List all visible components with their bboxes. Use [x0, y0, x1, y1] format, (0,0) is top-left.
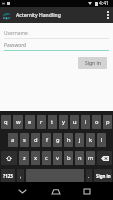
staticText: . [88, 172, 90, 179]
staticText: j [79, 136, 81, 144]
staticText: 4:41 [99, 0, 109, 7]
staticText: u [73, 118, 77, 126]
staticText: x [34, 154, 38, 162]
staticText: Username [4, 30, 28, 37]
button[interactable]: i [81, 115, 90, 129]
staticText: e [28, 118, 32, 126]
button[interactable]: x [31, 151, 40, 165]
button[interactable]: d [31, 133, 40, 147]
button[interactable]: r [37, 115, 46, 129]
button[interactable]: Shift [1, 151, 17, 165]
button[interactable]: Back [14, 182, 31, 200]
staticText: b [67, 154, 71, 162]
staticText: l [101, 136, 103, 144]
button[interactable]: More options [102, 7, 113, 23]
staticText: i [85, 118, 87, 126]
staticText: Sign in [96, 173, 111, 179]
button[interactable]: s [20, 133, 29, 147]
staticText: r [40, 118, 43, 126]
button[interactable]: m [86, 151, 95, 165]
button[interactable]: Recent apps [78, 182, 95, 200]
button[interactable]: e [25, 115, 35, 129]
button[interactable]: l [97, 133, 106, 147]
button[interactable]: . [86, 169, 92, 182]
staticText: f [46, 136, 48, 144]
staticText: c [45, 154, 48, 162]
button[interactable]: h [64, 133, 73, 147]
button[interactable]: f [42, 133, 51, 147]
staticText: t [51, 118, 54, 126]
button[interactable]: Home [47, 182, 64, 200]
button[interactable]: k [86, 133, 95, 147]
staticText: s [23, 136, 26, 144]
button[interactable]: g [53, 133, 62, 147]
button[interactable]: w [13, 115, 23, 129]
button[interactable]: Symbols [1, 169, 15, 182]
button[interactable]: y [59, 115, 68, 129]
button[interactable]: c [42, 151, 51, 165]
staticText: v [56, 154, 59, 162]
staticText: a [11, 136, 15, 144]
button[interactable]: v [53, 151, 62, 165]
button[interactable]: Delete [97, 151, 112, 165]
staticText: Sign in [85, 60, 101, 67]
staticText: ?123 [3, 173, 13, 179]
staticText: y [62, 118, 65, 126]
staticText: p [106, 118, 110, 126]
staticText: w [16, 118, 21, 126]
staticText: Password [4, 42, 27, 49]
button[interactable]: Sign in [94, 169, 112, 182]
staticText: Acternity Handling [16, 12, 61, 19]
button[interactable]: b [64, 151, 73, 165]
button[interactable]: o [92, 115, 101, 129]
staticText: k [89, 136, 93, 144]
staticText: q [4, 118, 8, 126]
button[interactable]: p [103, 115, 112, 129]
button[interactable]: q [1, 115, 11, 129]
staticText: n [78, 154, 82, 162]
button[interactable]: Sign in [78, 57, 107, 69]
button[interactable]: j [75, 133, 84, 147]
button[interactable]: u [70, 115, 79, 129]
staticText: g [56, 136, 60, 144]
button[interactable]: a [8, 133, 18, 147]
button[interactable]: , [17, 169, 24, 182]
button[interactable]: z [19, 151, 29, 165]
staticText: z [23, 154, 26, 162]
button[interactable]: t [48, 115, 57, 129]
staticText: , [20, 172, 22, 179]
button[interactable]: n [75, 151, 84, 165]
staticText: m [88, 154, 94, 162]
staticText: o [95, 118, 99, 126]
staticText: h [67, 136, 71, 144]
staticText: d [34, 136, 38, 144]
